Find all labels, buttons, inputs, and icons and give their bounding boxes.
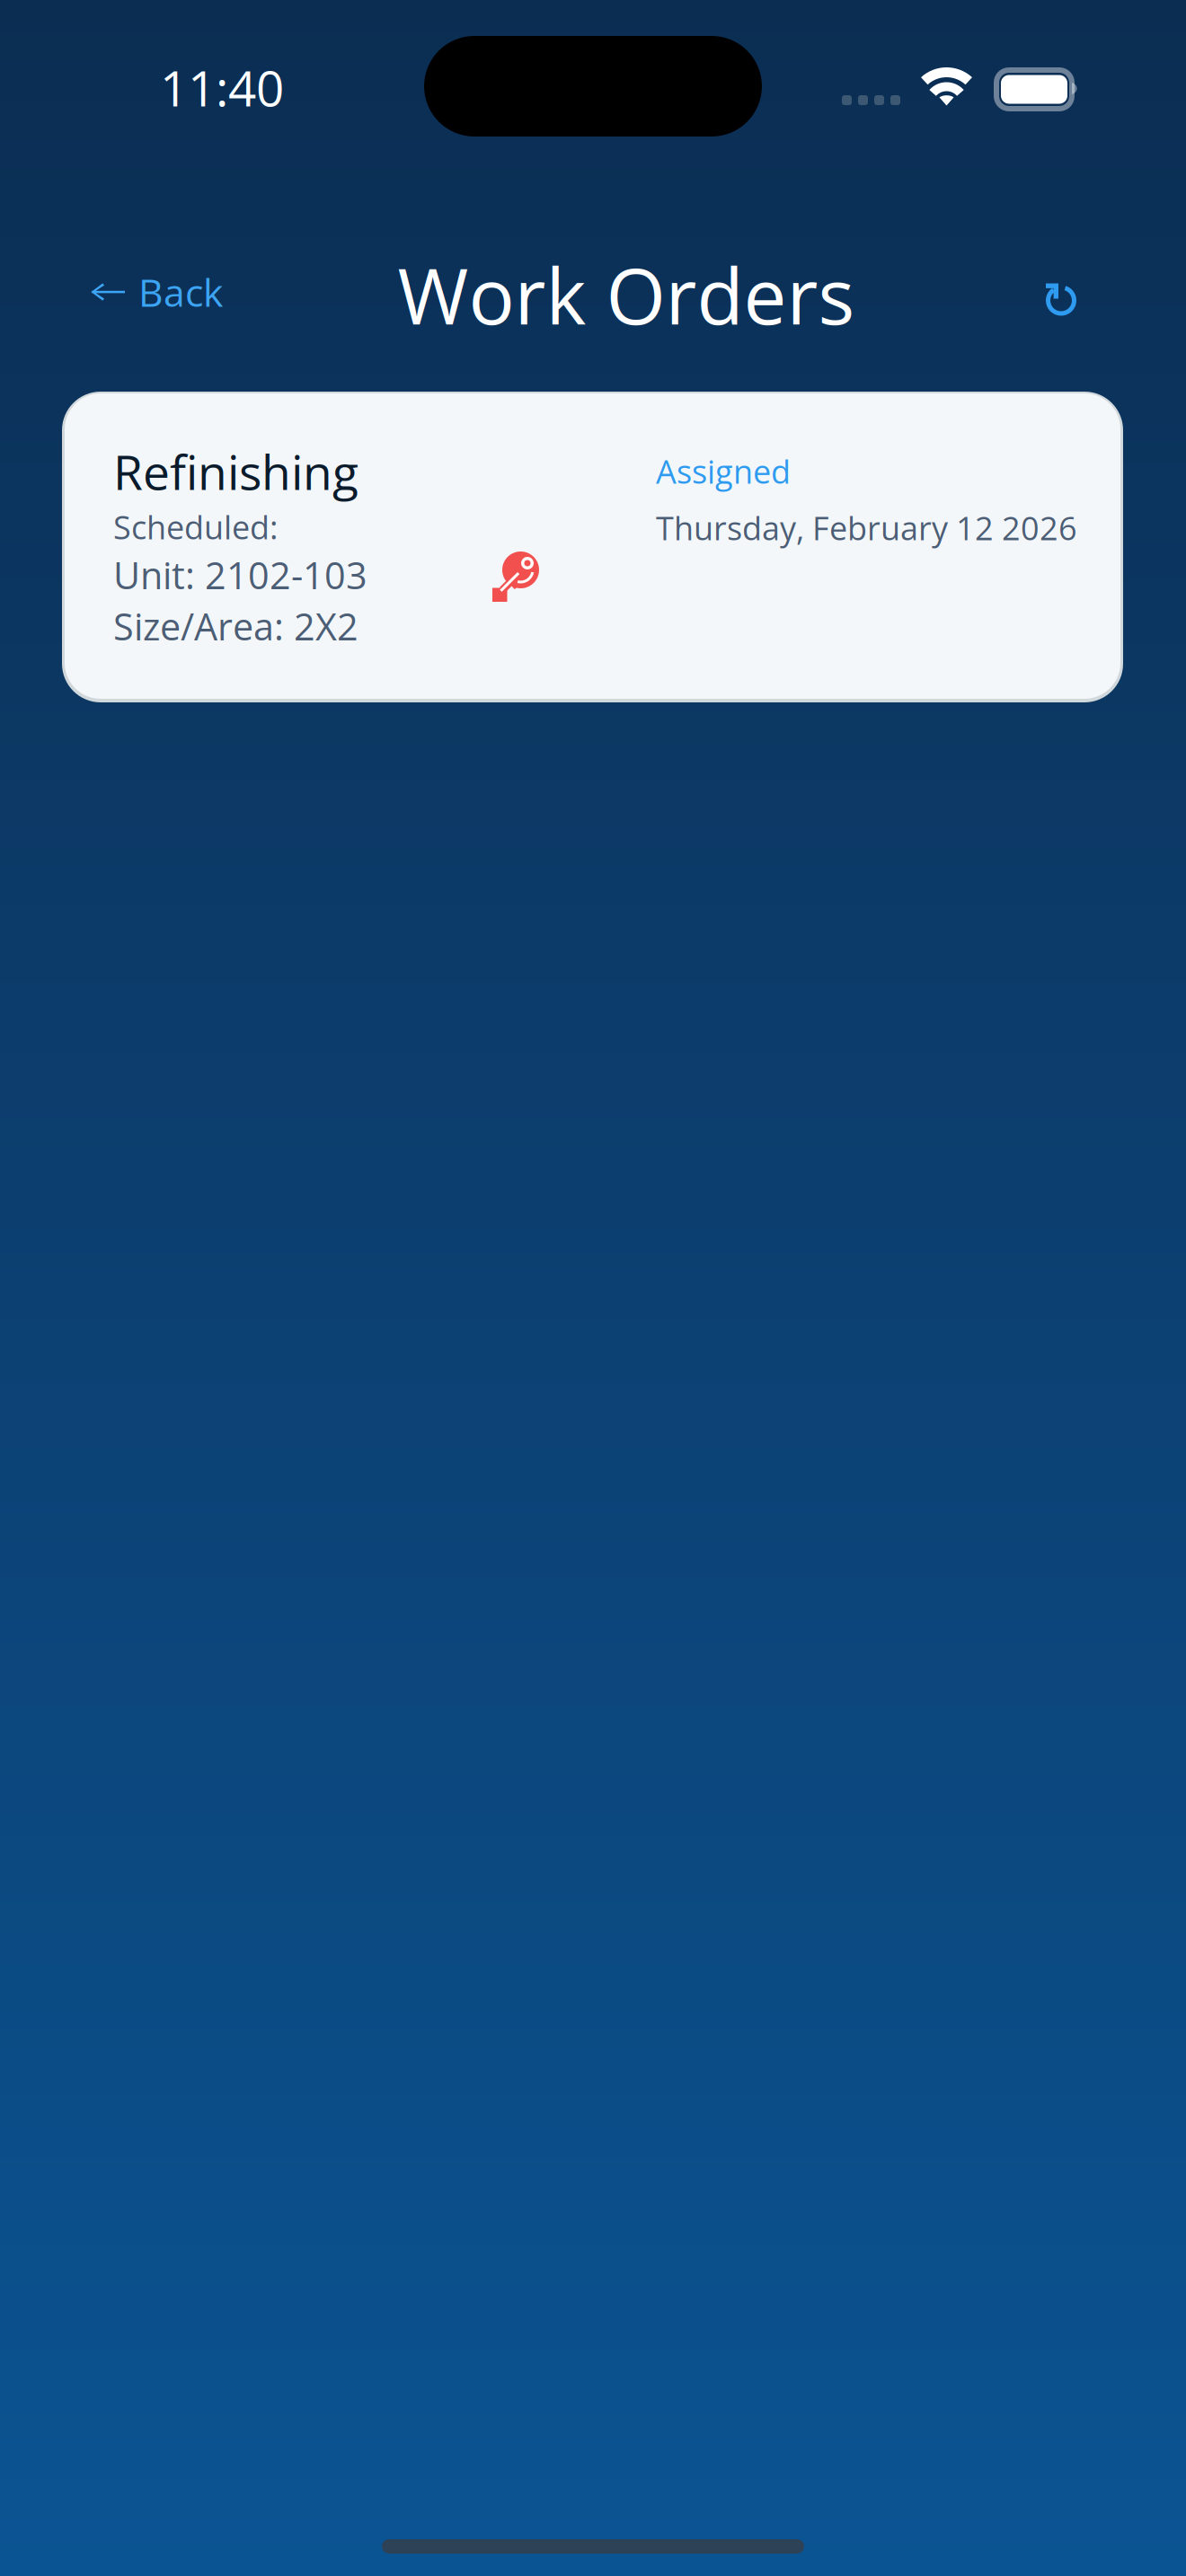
button[interactable]: Refresh [1026,264,1096,336]
button[interactable]: Back [75,248,239,336]
staticText: Thursday, February 12 2026 [656,506,1077,550]
staticText: Size/Area: 2X2 [113,601,358,651]
staticText: Unit: 2102-103 [113,549,367,600]
staticText: Scheduled: [113,505,278,549]
button[interactable]: Refinishing [61,391,1124,703]
staticText: Assigned [656,449,791,493]
staticText: Work Orders [398,243,855,347]
staticText: Back [138,266,223,318]
staticText: 11:40 [160,54,284,121]
staticText: Refinishing [113,439,358,504]
